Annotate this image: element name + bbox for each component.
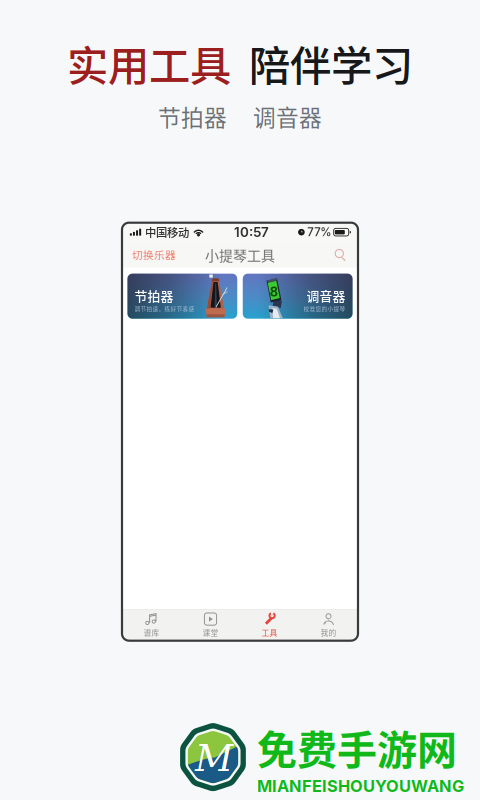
staticText: 校准您的小提琴 bbox=[303, 305, 345, 313]
staticText: 小提琴工具 bbox=[205, 244, 275, 265]
staticText: 我的 bbox=[320, 627, 336, 638]
staticText: MIANFEISHOUYOUWANG bbox=[257, 776, 464, 796]
button[interactable]: 工具 bbox=[240, 610, 299, 641]
staticText: 77% bbox=[307, 225, 331, 239]
button[interactable]: 8 bbox=[243, 274, 353, 319]
staticText: 8 bbox=[270, 284, 278, 299]
staticText: 免费手游网 bbox=[257, 718, 457, 776]
button[interactable]: 切换乐器 bbox=[130, 242, 178, 267]
staticText: 调音器 bbox=[253, 100, 322, 133]
button[interactable]: 节拍器 bbox=[127, 274, 237, 319]
staticText: 节拍器 bbox=[134, 286, 173, 304]
button[interactable]: 谱库 bbox=[122, 610, 181, 641]
staticText: 10:57 bbox=[234, 224, 269, 240]
button[interactable]: 课堂 bbox=[181, 610, 240, 641]
staticText: M bbox=[195, 736, 233, 780]
staticText: 课堂 bbox=[202, 627, 218, 638]
button[interactable]: 我的 bbox=[299, 610, 358, 641]
staticText: 中国移动 bbox=[145, 224, 189, 240]
staticText: 陪伴学习 bbox=[249, 33, 413, 93]
staticText: 工具 bbox=[261, 627, 277, 638]
staticText: 节拍器 bbox=[158, 100, 227, 133]
staticText: 切换乐器 bbox=[132, 247, 176, 262]
staticText: 调音器 bbox=[306, 286, 345, 304]
staticText: 实用工具 bbox=[67, 33, 231, 93]
staticText: 谱库 bbox=[143, 627, 159, 638]
button[interactable]: Search bbox=[331, 245, 350, 264]
staticText: 调节拍速，练好节奏感 bbox=[134, 305, 194, 313]
